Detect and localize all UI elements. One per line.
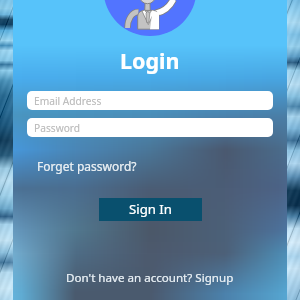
button[interactable]: Email Address: [27, 91, 273, 110]
staticText: Forget password?: [37, 158, 137, 174]
button[interactable]: Sign In: [99, 198, 202, 221]
button[interactable]: Don't have an account? Signup: [66, 270, 234, 286]
staticText: Password: [34, 121, 81, 135]
staticText: Sign In: [129, 200, 172, 218]
button[interactable]: Forget password?: [37, 158, 137, 174]
staticText: Login: [120, 46, 180, 75]
button[interactable]: Password: [27, 118, 273, 137]
staticText: Email Address: [34, 94, 102, 108]
